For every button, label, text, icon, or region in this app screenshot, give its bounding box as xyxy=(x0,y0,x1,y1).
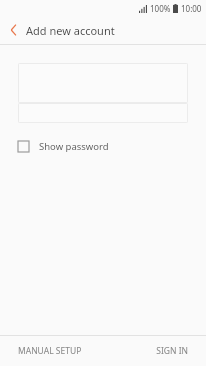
button[interactable] xyxy=(18,63,188,103)
staticText: 100% xyxy=(150,3,171,14)
button[interactable] xyxy=(18,103,188,123)
button[interactable]: Back xyxy=(0,16,26,44)
staticText: Show password xyxy=(39,140,109,153)
button[interactable]: MANUAL SETUP xyxy=(0,336,103,366)
staticText: SIGN IN xyxy=(156,345,188,357)
button[interactable]: Show password xyxy=(18,137,188,155)
staticText: Add new account xyxy=(26,23,115,38)
staticText: 10:00 xyxy=(181,3,202,14)
button[interactable]: SIGN IN xyxy=(103,336,206,366)
staticText: MANUAL SETUP xyxy=(18,345,82,357)
